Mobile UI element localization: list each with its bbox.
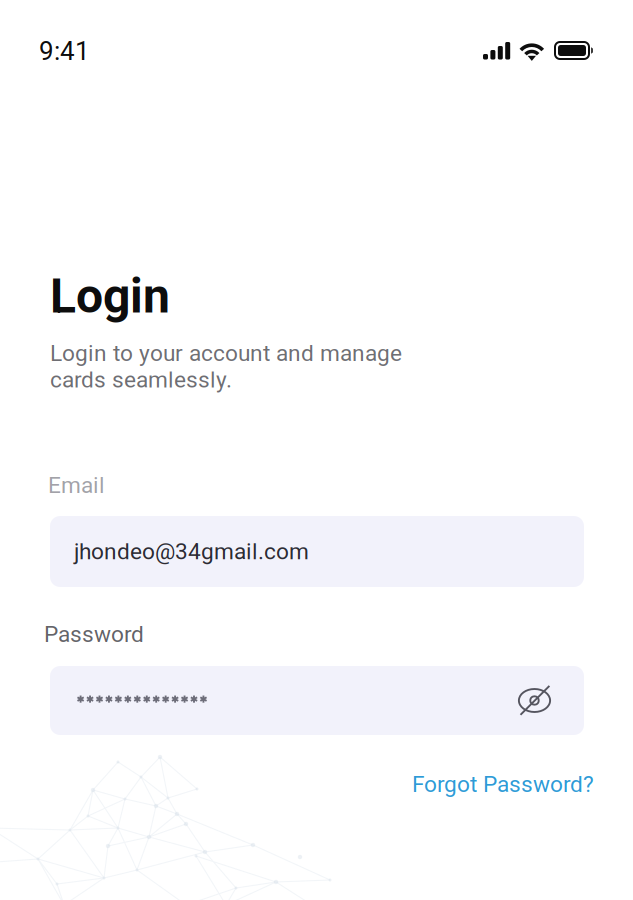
staticText: Email xyxy=(48,472,105,499)
staticText: 9:41 xyxy=(39,36,90,66)
staticText: Password xyxy=(44,621,144,648)
button[interactable]: Forgot Password? xyxy=(412,771,594,798)
staticText: jhondeo@34gmail.com xyxy=(74,538,309,565)
button[interactable]: Show password xyxy=(486,666,584,735)
staticText: Login to your account and manage cards s… xyxy=(50,340,402,393)
staticText: Forgot Password? xyxy=(412,771,594,798)
staticText: Login xyxy=(50,268,170,324)
